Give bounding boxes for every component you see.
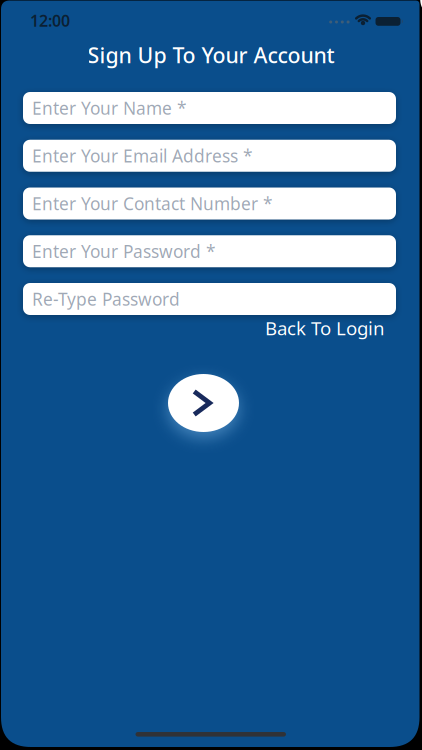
staticText: Enter Your Contact Number * xyxy=(32,192,273,215)
staticText: Enter Your Password * xyxy=(32,240,216,263)
button[interactable]: Enter Your Contact Number * xyxy=(23,187,396,219)
staticText: Back To Login xyxy=(265,316,385,340)
button[interactable]: Enter Your Email Address * xyxy=(23,140,396,172)
staticText: Sign Up To Your Account xyxy=(87,41,334,69)
button[interactable]: Enter Your Name * xyxy=(23,92,396,124)
button[interactable] xyxy=(167,373,240,433)
staticText: Enter Your Name * xyxy=(32,96,187,119)
button[interactable]: Back To Login xyxy=(165,317,385,339)
button[interactable]: Enter Your Password * xyxy=(23,235,396,267)
staticText: Enter Your Email Address * xyxy=(32,144,253,167)
staticText: 12:00 xyxy=(30,10,70,31)
button[interactable]: Re-Type Password xyxy=(23,283,396,315)
staticText: Re-Type Password xyxy=(32,287,180,310)
